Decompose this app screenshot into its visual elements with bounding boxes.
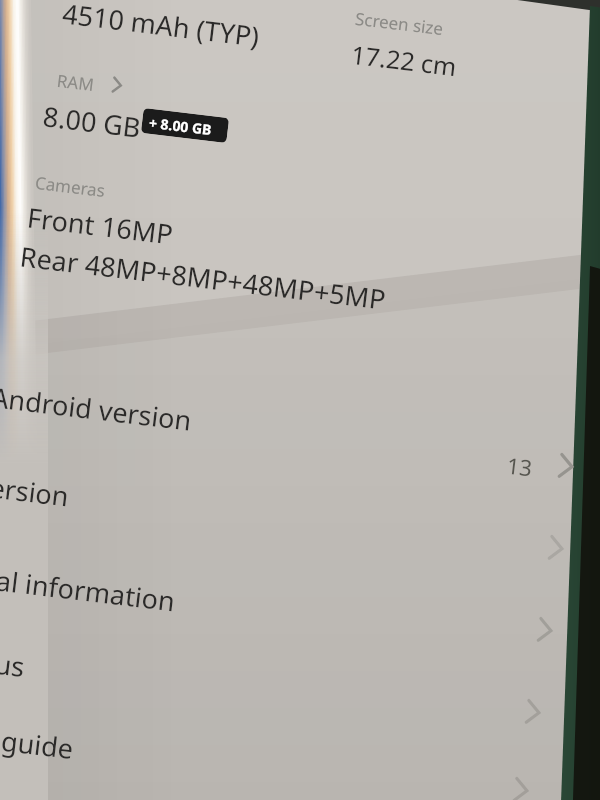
staticText: RAM [56,69,95,96]
button[interactable]: Status [0,636,575,716]
button[interactable]: Legal information [0,558,575,636]
staticText: Version [0,466,71,514]
staticText: Screen size [354,7,445,40]
staticText: er guide [0,718,76,767]
staticText: Front 16MP [25,198,176,252]
staticText: 17.22 cm [349,37,459,83]
button[interactable]: User guide [0,716,575,800]
staticText: atus [0,642,27,685]
staticText: 8.00 GB [41,97,143,146]
staticText: + 8.00 GB [148,113,213,139]
staticText: Rear 48MP+8MP+48MP+5MP [18,237,388,318]
staticText: 13 [505,450,535,482]
staticText: Android version [0,378,194,439]
button[interactable]: Version [0,460,575,558]
button[interactable]: Android version [0,378,575,460]
staticText: Cameras [34,171,107,202]
staticText: 4510 mAh (TYP) [60,0,261,55]
button[interactable]: + 8.00 GB [141,108,229,143]
staticText: egal information [0,558,177,619]
